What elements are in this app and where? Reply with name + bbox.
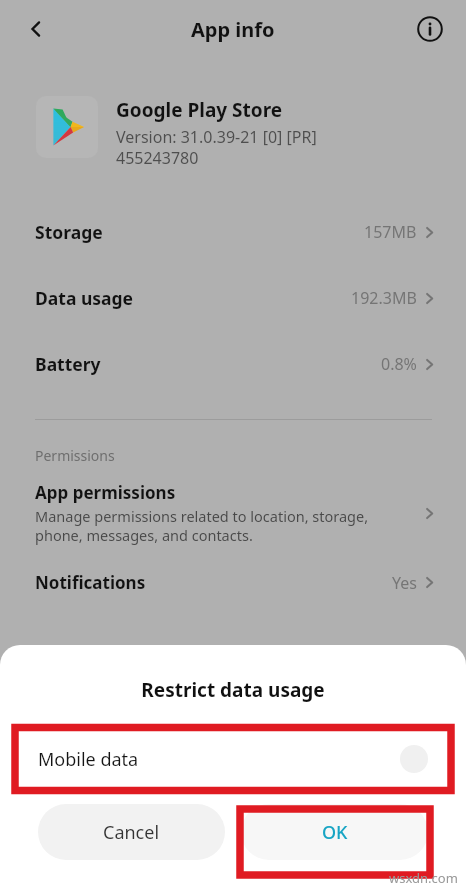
staticText: wsxdn.com (389, 869, 458, 887)
button[interactable]: Notifications (35, 571, 438, 594)
button[interactable]: Cancel (38, 804, 225, 860)
staticText: Storage (35, 220, 364, 244)
button[interactable]: Back (16, 9, 56, 49)
button[interactable]: OK (241, 804, 428, 860)
staticText: Mobile data (38, 747, 400, 772)
staticText: Yes (392, 572, 417, 594)
button[interactable]: Battery (0, 331, 466, 397)
staticText: Manage permissions related to location, … (35, 506, 369, 545)
staticText: Data usage (35, 286, 351, 310)
staticText: Restrict data usage (0, 677, 466, 703)
staticText: Battery (35, 352, 381, 376)
staticText: App info (191, 16, 275, 43)
staticText: 0.8% (381, 353, 417, 375)
staticText: 157MB (364, 221, 417, 243)
button[interactable]: Storage (0, 199, 466, 265)
staticText: App permissions (35, 481, 176, 504)
button[interactable]: App info details (410, 9, 450, 49)
staticText: 192.3MB (351, 287, 417, 309)
staticText: Notifications (35, 571, 392, 594)
staticText: Google Play Store (116, 97, 283, 123)
button[interactable]: Data usage (0, 265, 466, 331)
staticText: Version: 31.0.39-21 [0] [PR] 455243780 (116, 126, 317, 169)
staticText: Cancel (103, 820, 160, 845)
button[interactable]: Mobile data (0, 726, 466, 792)
staticText: OK (322, 820, 348, 845)
button[interactable]: App permissions (35, 481, 438, 545)
staticText: Permissions (35, 446, 115, 465)
